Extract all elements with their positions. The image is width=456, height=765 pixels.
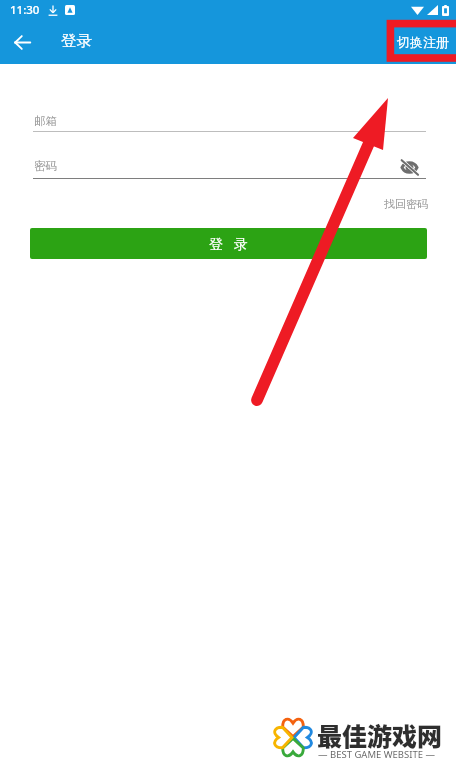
- staticText: 11:30: [10, 2, 40, 18]
- button[interactable]: 找回密码: [384, 197, 428, 211]
- button[interactable]: Back: [6, 26, 38, 58]
- staticText: 密码: [34, 159, 57, 173]
- button[interactable]: 登 录: [30, 228, 427, 259]
- staticText: 登 录: [209, 234, 248, 253]
- staticText: 邮箱: [34, 114, 57, 128]
- staticText: 最佳游戏网: [317, 717, 443, 753]
- staticText: 登录: [61, 31, 92, 51]
- button[interactable]: 切换注册: [390, 26, 456, 58]
- button[interactable]: Show password: [397, 155, 421, 179]
- staticText: — BEST GAME WEBSITE —: [318, 748, 436, 761]
- staticText: 找回密码: [384, 197, 428, 211]
- staticText: 切换注册: [397, 34, 449, 50]
